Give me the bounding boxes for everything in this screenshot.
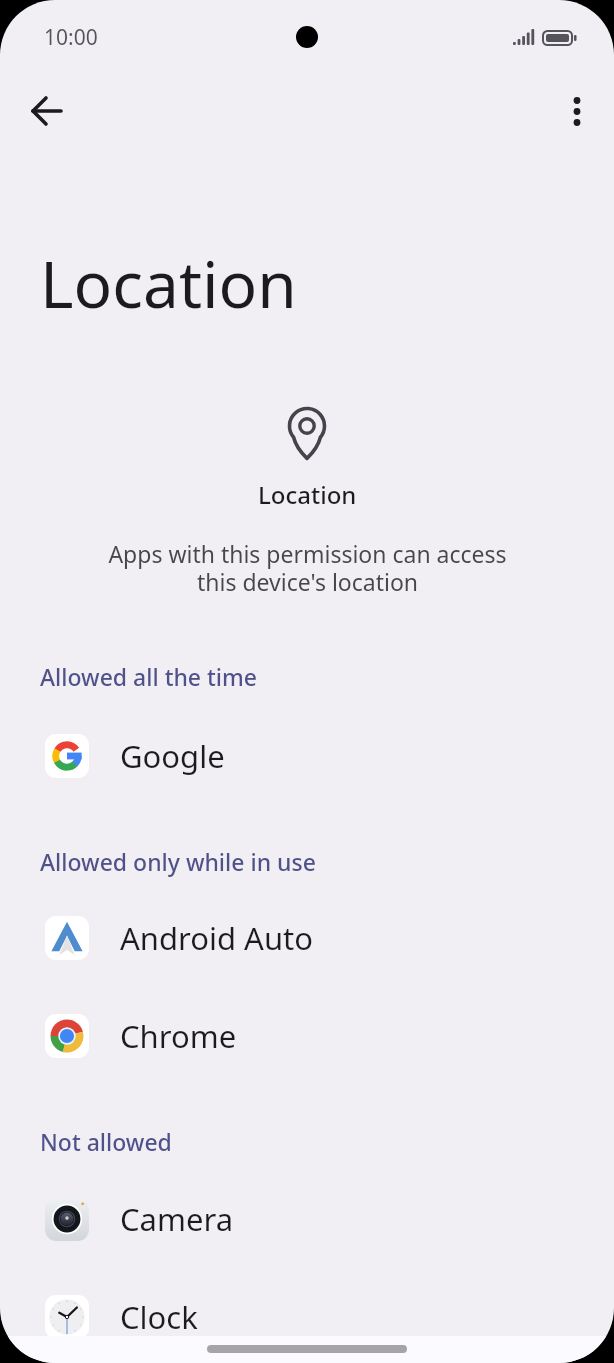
button[interactable]: Chrome bbox=[0, 987, 614, 1085]
staticText: 10:00 bbox=[44, 23, 98, 52]
staticText: Location bbox=[40, 240, 297, 327]
button[interactable]: Clock bbox=[0, 1268, 614, 1363]
button[interactable] bbox=[553, 87, 601, 135]
button[interactable] bbox=[23, 87, 71, 135]
staticText: Clock bbox=[120, 1296, 198, 1338]
staticText: Not allowed bbox=[40, 1126, 172, 1157]
button[interactable]: Camera bbox=[0, 1170, 614, 1268]
button[interactable]: Google bbox=[0, 707, 614, 805]
staticText: Allowed all the time bbox=[40, 661, 258, 692]
staticText: Android Auto bbox=[120, 917, 314, 959]
staticText: Location bbox=[258, 478, 357, 506]
staticText: Apps with this permission can access thi… bbox=[108, 538, 507, 598]
staticText: Allowed only while in use bbox=[40, 846, 316, 877]
button[interactable]: Android Auto bbox=[0, 889, 614, 987]
staticText: Chrome bbox=[120, 1015, 237, 1057]
staticText: Camera bbox=[120, 1198, 234, 1240]
staticText: Google bbox=[120, 735, 225, 777]
